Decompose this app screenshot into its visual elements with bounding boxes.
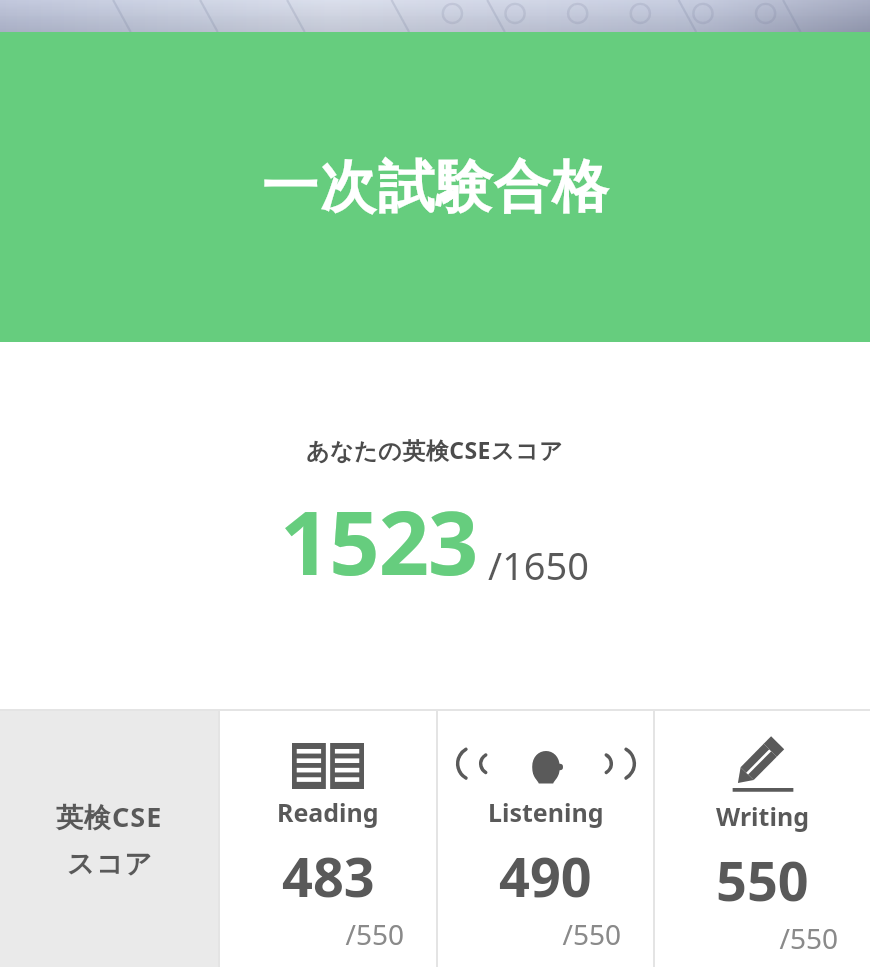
button[interactable]: 英検CSE	[0, 711, 218, 967]
staticText: 一次試験合格	[261, 152, 609, 223]
other: Listening	[500, 743, 592, 789]
staticText: 483	[282, 839, 375, 913]
button[interactable]: Writing	[655, 711, 870, 967]
other: Reading	[292, 743, 364, 789]
staticText: 550	[716, 843, 809, 917]
button[interactable]: Reading	[220, 711, 436, 967]
staticText: /550	[438, 915, 621, 953]
staticText: /550	[655, 919, 838, 957]
staticText: /550	[220, 915, 404, 953]
staticText: 英検CSE	[56, 798, 163, 835]
staticText: スコア	[67, 847, 153, 881]
staticText: 490	[499, 839, 592, 913]
staticText: Listening	[488, 795, 604, 829]
staticText: あなたの英検CSEスコア	[306, 434, 564, 465]
staticText: 1523	[280, 481, 478, 601]
other: Writing	[730, 743, 796, 793]
button[interactable]: Listening	[438, 711, 653, 967]
staticText: Writing	[716, 799, 809, 833]
staticText: /1650	[488, 539, 590, 591]
staticText: Reading	[277, 795, 379, 829]
